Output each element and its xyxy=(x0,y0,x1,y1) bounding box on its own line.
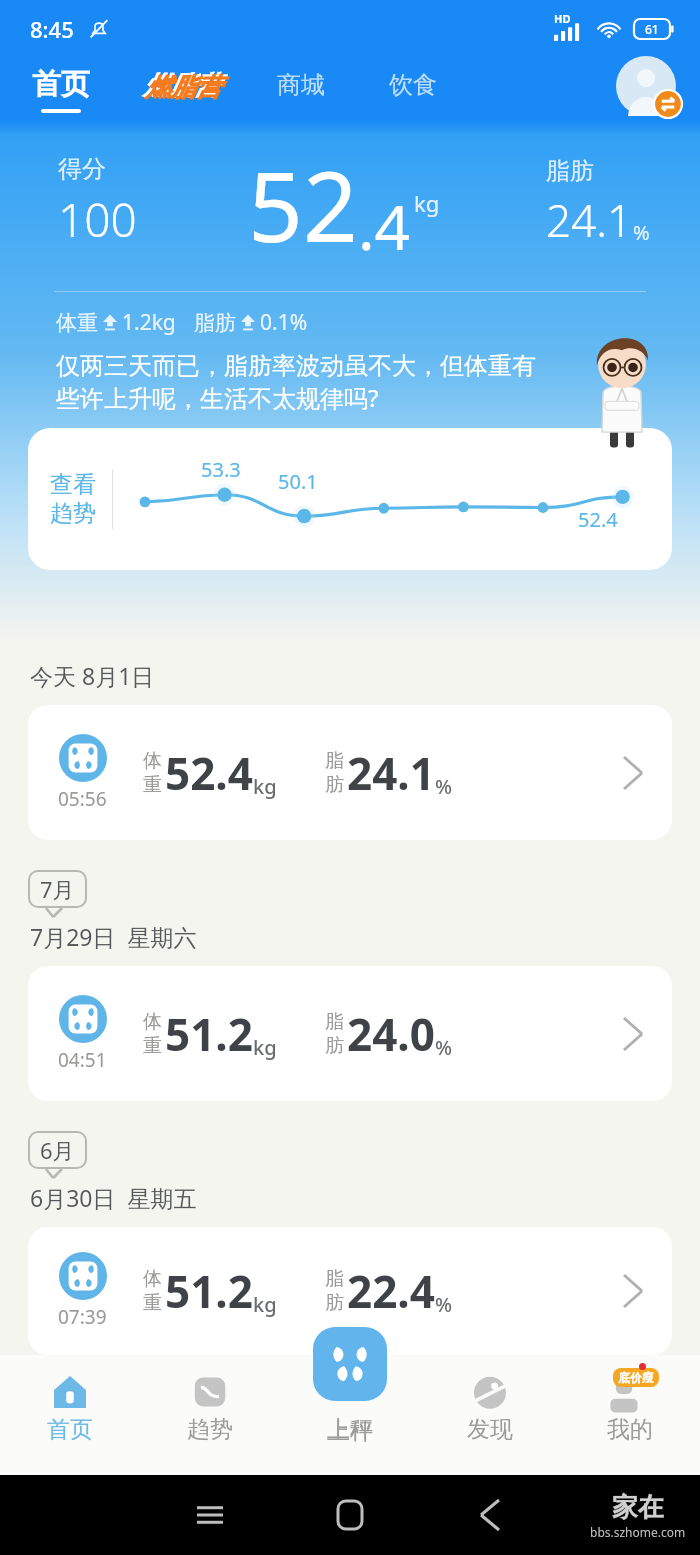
button[interactable]: Profile, switch user xyxy=(616,56,682,118)
staticText: 脂肪 xyxy=(546,156,594,186)
staticText: 体 xyxy=(143,1010,162,1034)
staticText: % xyxy=(435,773,453,800)
staticText: 肪 xyxy=(325,1291,344,1315)
staticText: 24.1 xyxy=(347,743,435,803)
button[interactable]: 首页 xyxy=(0,1369,140,1475)
staticText: 07:39 xyxy=(58,1304,107,1330)
staticText: 04:51 xyxy=(58,1047,107,1073)
staticText: 首页 xyxy=(32,66,90,103)
button[interactable]: 底价瘦 xyxy=(560,1369,700,1475)
button[interactable]: 燃脂营 xyxy=(140,68,223,111)
staticText: 燃脂营 xyxy=(146,72,221,103)
staticText: 52 xyxy=(248,139,358,270)
staticText: .4 xyxy=(358,184,411,268)
staticText: 脂 xyxy=(325,749,344,773)
staticText: 脂 xyxy=(325,1267,344,1291)
staticText: 上秤 xyxy=(327,1417,373,1446)
button[interactable]: Recents xyxy=(197,1502,223,1528)
staticText: 脂肪 xyxy=(194,310,236,336)
staticText: 8:45 xyxy=(30,14,74,44)
button[interactable]: 趋势 xyxy=(140,1369,280,1475)
staticText: 肪 xyxy=(325,1034,344,1058)
staticText: 重 xyxy=(143,773,162,797)
staticText: 体 xyxy=(143,1267,162,1291)
staticText: % xyxy=(435,1034,453,1061)
staticText: 50.1 xyxy=(278,468,318,495)
button[interactable]: 05:56 xyxy=(28,705,672,840)
staticText: 趋势 xyxy=(50,499,96,528)
button[interactable]: Back xyxy=(481,1500,499,1530)
staticText: 趋势 xyxy=(187,1415,233,1444)
staticText: 6月 xyxy=(40,1135,75,1165)
staticText: kg xyxy=(253,1291,277,1318)
staticText: 体 xyxy=(143,749,162,773)
staticText: kg xyxy=(414,188,440,218)
staticText: 得分 xyxy=(58,154,106,184)
button[interactable]: Home xyxy=(338,1501,362,1529)
staticText: 7月 xyxy=(40,874,75,904)
staticText: 7月29日 星期六 xyxy=(30,921,197,952)
staticText: 重 xyxy=(143,1034,162,1058)
staticText: 肪 xyxy=(325,773,344,797)
staticText: 6月30日 星期五 xyxy=(30,1182,197,1213)
staticText: 24.0 xyxy=(347,1004,435,1064)
staticText: 些许上升呢，生活不太规律吗? xyxy=(56,381,379,414)
staticText: 51.2 xyxy=(165,1261,253,1321)
staticText: kg xyxy=(253,773,277,800)
staticText: 1.2kg xyxy=(122,308,176,337)
staticText: 0.1% xyxy=(260,308,308,337)
button[interactable]: 07:39 xyxy=(28,1227,672,1355)
button[interactable]: 查看 xyxy=(28,428,672,570)
staticText: 发现 xyxy=(467,1415,513,1444)
staticText: 61 xyxy=(645,21,659,37)
staticText: 底价瘦 xyxy=(618,1370,654,1385)
staticText: 我的 xyxy=(607,1415,653,1444)
staticText: 仅两三天而已，脂肪率波动虽不大，但体重有 xyxy=(56,351,536,381)
staticText: 燃脂营 xyxy=(144,70,219,101)
button[interactable]: 上秤 Weigh in xyxy=(313,1327,387,1401)
staticText: HD xyxy=(554,11,571,26)
button[interactable]: 饮食 xyxy=(383,68,443,110)
staticText: % xyxy=(435,1291,453,1318)
staticText: 家在 xyxy=(612,1491,664,1524)
staticText: 体重 xyxy=(56,310,98,336)
staticText: 100 xyxy=(58,188,137,251)
staticText: bbs.szhome.com xyxy=(590,1524,686,1540)
staticText: 24.1 xyxy=(546,190,633,250)
staticText: 查看 xyxy=(50,470,96,499)
button[interactable]: 发现 xyxy=(420,1369,560,1475)
staticText: kg xyxy=(253,1034,277,1061)
staticText: 重 xyxy=(143,1291,162,1315)
staticText: 05:56 xyxy=(58,786,107,812)
button[interactable]: 04:51 xyxy=(28,966,672,1101)
button[interactable]: 商城 xyxy=(271,68,331,110)
staticText: 上秤 xyxy=(327,1415,373,1444)
staticText: 22.4 xyxy=(347,1261,435,1321)
staticText: 首页 xyxy=(47,1415,93,1444)
staticText: 53.3 xyxy=(201,456,241,483)
staticText: % xyxy=(633,219,650,246)
staticText: 今天 8月1日 xyxy=(30,660,155,691)
staticText: 脂 xyxy=(325,1010,344,1034)
staticText: 52.4 xyxy=(578,506,618,533)
button[interactable]: 上秤 xyxy=(280,1369,420,1475)
button[interactable]: 首页 xyxy=(30,66,92,113)
staticText: 51.2 xyxy=(165,1004,253,1064)
staticText: 52.4 xyxy=(165,743,253,803)
